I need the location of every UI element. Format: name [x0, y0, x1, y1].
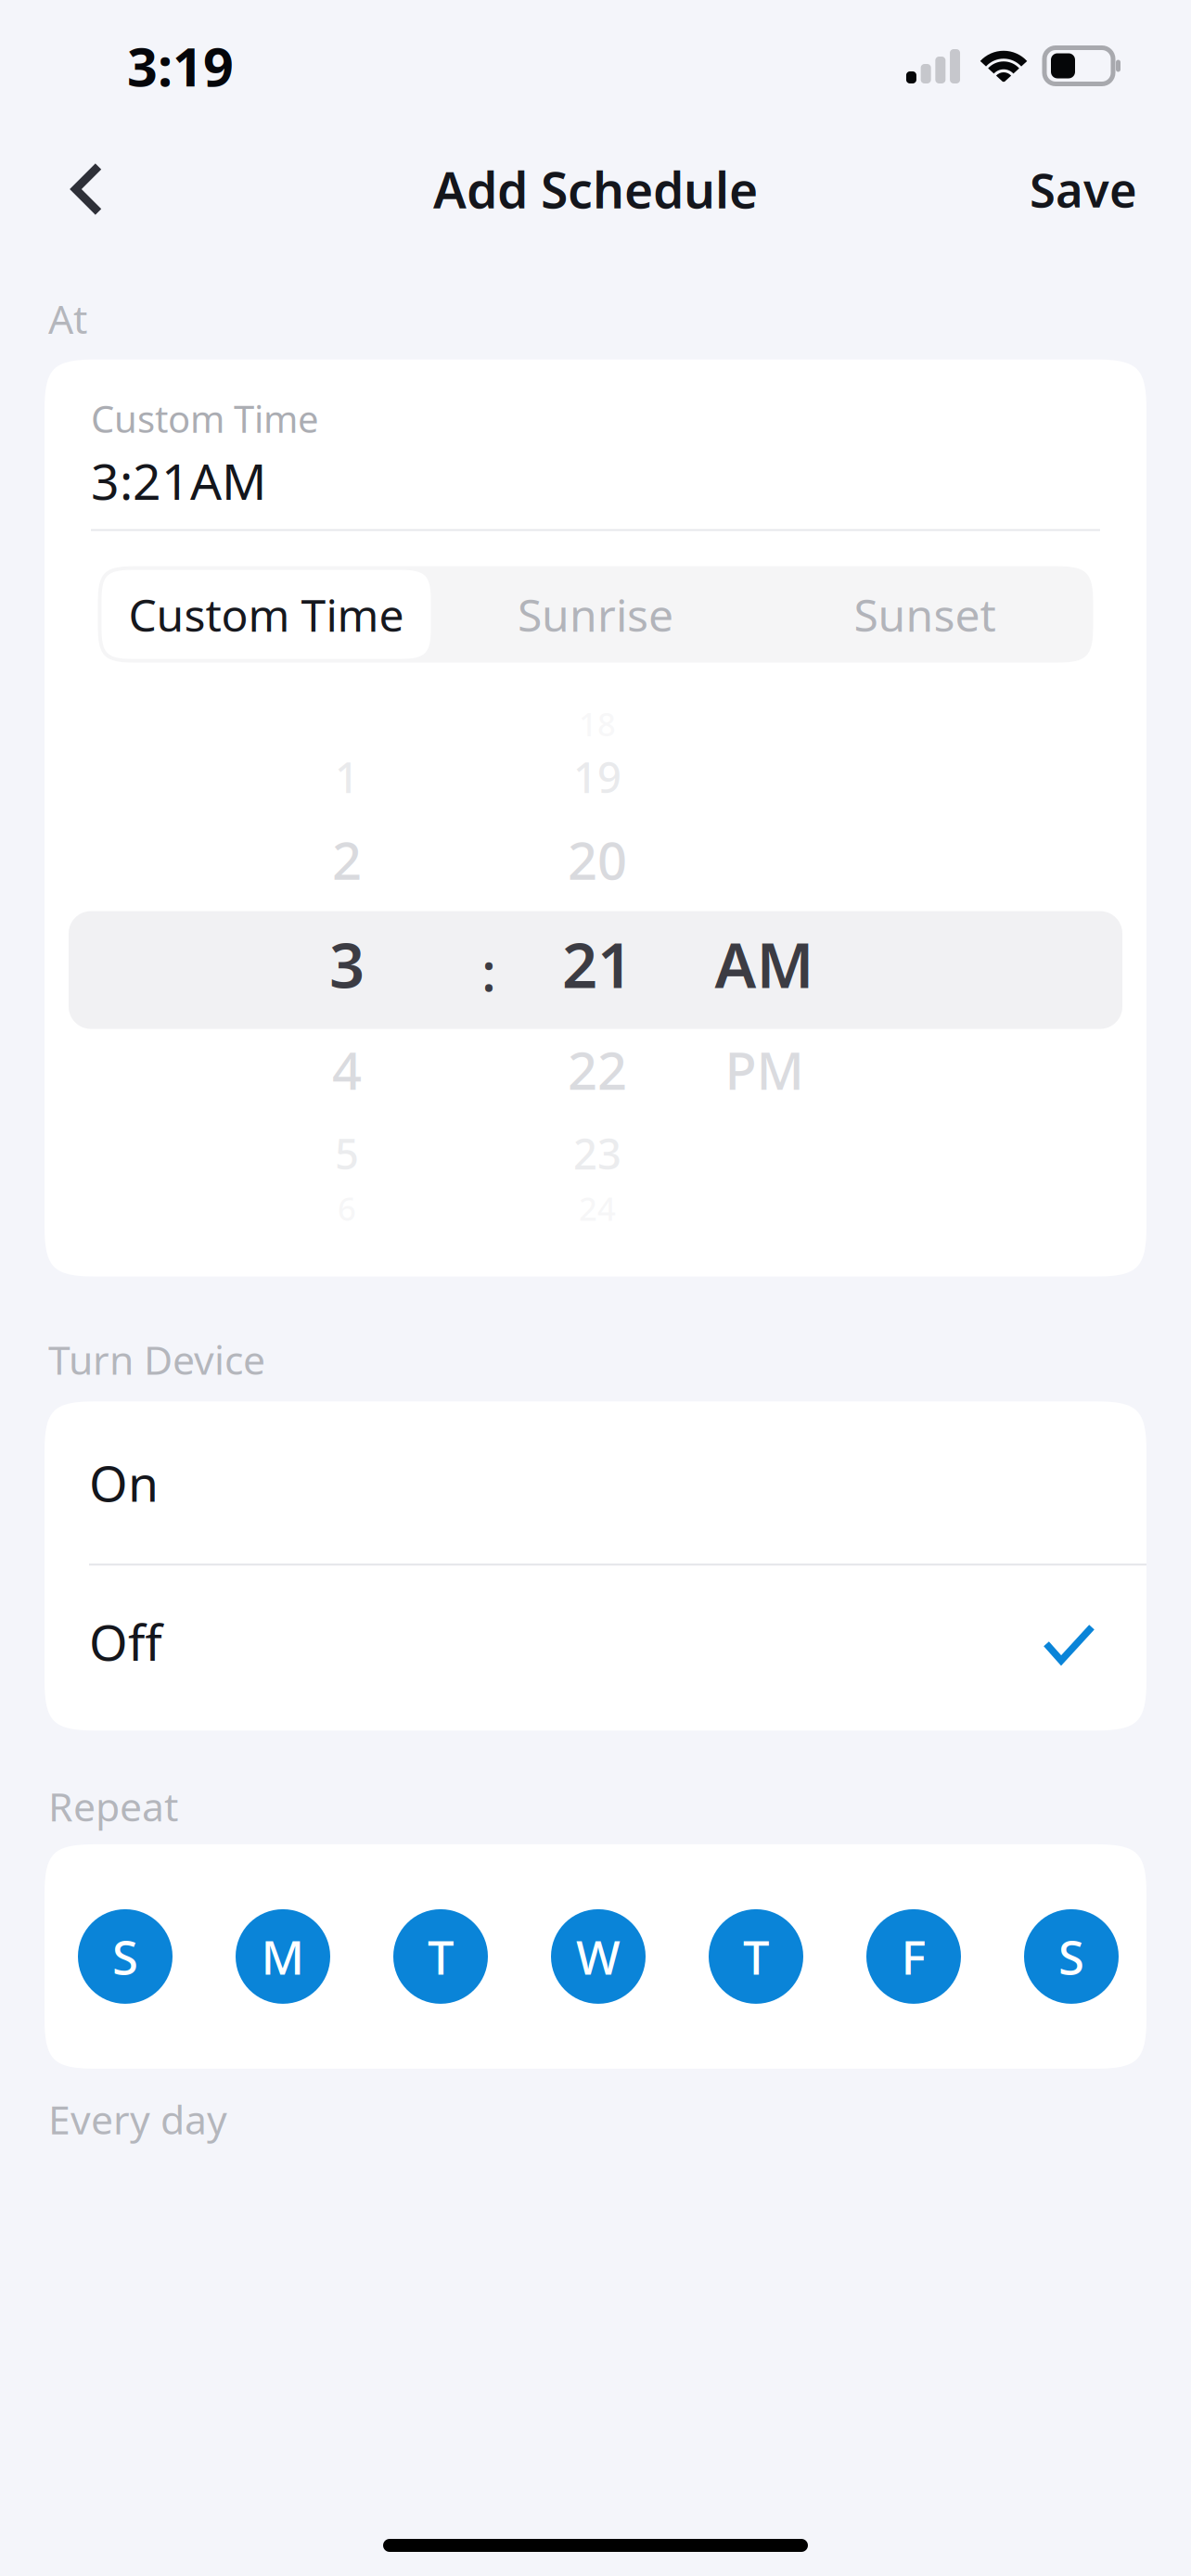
- staticText: 19: [573, 749, 621, 805]
- staticText: Custom Time: [128, 585, 404, 644]
- button[interactable]: Custom Time: [45, 360, 1146, 531]
- staticText: T: [428, 1925, 454, 1988]
- button[interactable]: Custom Time: [102, 570, 431, 659]
- button[interactable]: Sunday: [78, 1909, 173, 2004]
- staticText: 3:21AM: [91, 448, 266, 513]
- button[interactable]: Tuesday: [393, 1909, 488, 2004]
- staticText: W: [576, 1925, 621, 1988]
- staticText: Sunrise: [518, 585, 673, 644]
- staticText: Custom Time: [91, 394, 319, 443]
- staticText: 3:19: [127, 31, 234, 101]
- button[interactable]: Monday: [236, 1909, 330, 2004]
- button[interactable]: Thursday: [709, 1909, 803, 2004]
- staticText: Every day: [48, 2093, 227, 2145]
- staticText: 20: [568, 825, 627, 894]
- button[interactable]: Save: [998, 141, 1191, 237]
- staticText: PM: [725, 1035, 804, 1104]
- button[interactable]: Back: [0, 141, 140, 237]
- staticText: Save: [1030, 158, 1137, 220]
- staticText: S: [1058, 1925, 1084, 1988]
- staticText: At: [48, 292, 87, 345]
- staticText: Sunset: [854, 585, 996, 644]
- button[interactable]: On: [45, 1401, 1146, 1564]
- staticText: T: [743, 1925, 769, 1988]
- staticText: 6: [338, 1187, 356, 1230]
- staticText: Turn Device: [48, 1333, 265, 1386]
- staticText: Off: [89, 1609, 162, 1674]
- staticText: 23: [573, 1125, 621, 1181]
- staticText: Add Schedule: [433, 156, 758, 222]
- button[interactable]: Wednesday: [551, 1909, 646, 2004]
- staticText: 5: [335, 1125, 359, 1181]
- staticText: :: [481, 934, 496, 1007]
- staticText: F: [901, 1925, 926, 1988]
- staticText: S: [112, 1925, 138, 1988]
- staticText: 21: [562, 923, 633, 1005]
- button[interactable]: Saturday: [1024, 1909, 1119, 2004]
- staticText: 1: [335, 749, 359, 805]
- button[interactable]: Sunset: [760, 570, 1089, 659]
- staticText: 24: [579, 1187, 616, 1230]
- button[interactable]: Friday: [866, 1909, 961, 2004]
- staticText: 22: [568, 1035, 627, 1104]
- staticText: 4: [332, 1035, 362, 1104]
- staticText: On: [89, 1450, 159, 1515]
- staticText: AM: [715, 923, 814, 1005]
- staticText: 3: [329, 923, 365, 1005]
- staticText: M: [261, 1925, 305, 1988]
- staticText: Repeat: [48, 1780, 178, 1832]
- button[interactable]: Off: [45, 1566, 1146, 1731]
- staticText: 2: [332, 825, 362, 894]
- button[interactable]: Sunrise: [431, 570, 760, 659]
